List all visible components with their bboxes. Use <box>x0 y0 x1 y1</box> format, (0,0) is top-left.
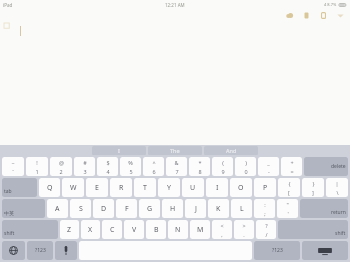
button[interactable]: Notes <box>319 11 328 20</box>
staticText: ) <box>245 159 247 166</box>
button[interactable]: } <box>302 178 324 197</box>
button[interactable]: ~ <box>2 157 24 176</box>
staticText: Y <box>167 183 171 193</box>
button[interactable]: ( <box>212 157 233 176</box>
button[interactable]: G <box>139 199 160 218</box>
staticText: * <box>198 159 202 166</box>
button[interactable]: R <box>110 178 132 197</box>
staticText: [ <box>288 189 290 196</box>
staticText: 7 <box>175 168 179 175</box>
button[interactable]: W <box>62 178 84 197</box>
button[interactable]: Voice input <box>55 241 77 260</box>
button[interactable]: Document <box>302 11 311 20</box>
staticText: \ <box>336 189 339 196</box>
button[interactable]: O <box>230 178 252 197</box>
button[interactable]: ! <box>26 157 48 176</box>
button[interactable]: ?123 <box>27 241 53 260</box>
button[interactable]: Switch language <box>2 241 25 260</box>
button[interactable]: M <box>190 220 210 239</box>
button[interactable]: + <box>281 157 302 176</box>
button[interactable]: ) <box>235 157 256 176</box>
button[interactable]: Z <box>60 220 79 239</box>
button[interactable]: _ <box>258 157 279 176</box>
staticText: _ <box>267 159 270 166</box>
button[interactable]: tab <box>2 178 37 197</box>
staticText: 中英 <box>4 210 14 216</box>
staticText: : <box>264 201 266 208</box>
staticText: I <box>118 147 120 154</box>
button[interactable]: L <box>231 199 252 218</box>
button[interactable]: 中英 <box>2 199 45 218</box>
button[interactable]: F <box>116 199 137 218</box>
button[interactable]: Cloud <box>285 11 294 20</box>
button[interactable]: J <box>185 199 206 218</box>
button[interactable]: shift <box>278 220 348 239</box>
staticText: 4 8.7% <box>324 2 337 7</box>
staticText: ^ <box>152 159 156 166</box>
staticText: V <box>132 225 137 235</box>
button[interactable]: D <box>93 199 114 218</box>
staticText: < <box>220 222 224 229</box>
button[interactable]: X <box>81 220 100 239</box>
button[interactable]: | <box>326 178 348 197</box>
button[interactable]: H <box>162 199 183 218</box>
button[interactable]: A <box>47 199 68 218</box>
button[interactable]: C <box>102 220 122 239</box>
staticText: 8 <box>198 168 202 175</box>
staticText: 4 <box>106 168 110 175</box>
staticText: - <box>268 168 270 175</box>
button[interactable]: Share <box>336 11 345 20</box>
button[interactable]: Hide keyboard <box>302 241 348 260</box>
staticText: J <box>195 204 197 214</box>
button[interactable]: The <box>148 146 202 155</box>
button[interactable]: " <box>277 199 298 218</box>
staticText: + <box>290 159 294 166</box>
button[interactable]: B <box>146 220 166 239</box>
button[interactable]: # <box>74 157 95 176</box>
button[interactable]: Y <box>158 178 180 197</box>
staticText: shift <box>4 230 15 237</box>
button[interactable]: shift <box>2 220 58 239</box>
button[interactable]: V <box>124 220 144 239</box>
button[interactable]: % <box>120 157 141 176</box>
button[interactable]: * <box>189 157 210 176</box>
button[interactable]: N <box>168 220 188 239</box>
button[interactable]: : <box>254 199 275 218</box>
staticText: 12:21 AM <box>165 2 185 8</box>
button[interactable]: Q <box>39 178 60 197</box>
staticText: , <box>221 231 223 238</box>
button[interactable]: return <box>300 199 348 218</box>
button[interactable]: I <box>206 178 228 197</box>
staticText: return <box>331 209 346 216</box>
button[interactable]: U <box>182 178 204 197</box>
staticText: O <box>238 183 244 193</box>
button[interactable]: @ <box>50 157 72 176</box>
button[interactable]: < <box>212 220 232 239</box>
staticText: ` <box>12 168 14 175</box>
button[interactable]: ?123 <box>254 241 300 260</box>
button[interactable]: T <box>134 178 156 197</box>
button[interactable]: K <box>208 199 229 218</box>
staticText: & <box>174 159 179 166</box>
staticText: N <box>175 225 181 235</box>
button[interactable]: { <box>278 178 300 197</box>
staticText: 2 <box>59 168 63 175</box>
staticText: # <box>83 159 87 166</box>
button[interactable]: S <box>70 199 91 218</box>
staticText: ? <box>265 222 268 229</box>
button[interactable]: > <box>234 220 254 239</box>
staticText: 6 <box>152 168 156 175</box>
button[interactable]: ? <box>256 220 276 239</box>
staticText: 1 <box>35 168 39 175</box>
button[interactable]: I <box>92 146 146 155</box>
button[interactable]: $ <box>97 157 118 176</box>
button[interactable]: P <box>254 178 276 197</box>
button[interactable]: & <box>166 157 187 176</box>
button[interactable]: And <box>204 146 258 155</box>
button[interactable]: E <box>86 178 108 197</box>
button[interactable]: delete <box>304 157 348 176</box>
staticText: C <box>110 225 115 235</box>
button[interactable]: ^ <box>143 157 164 176</box>
staticText: ] <box>312 189 314 196</box>
